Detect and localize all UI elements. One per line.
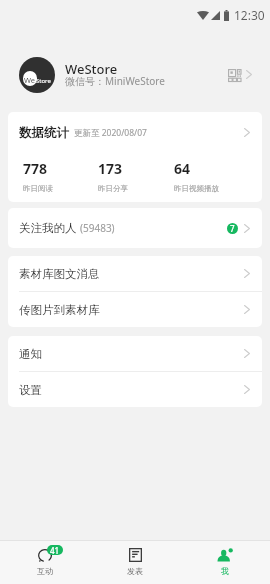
staticText: 我 — [221, 566, 229, 576]
staticText: 昨日分享 — [98, 184, 128, 193]
staticText: 12:30 — [234, 7, 265, 23]
staticText: 设置 — [19, 383, 42, 397]
button[interactable]: 素材库图文消息 — [8, 256, 262, 291]
button[interactable]: We — [0, 47, 270, 102]
button[interactable]: 41 — [0, 541, 90, 584]
staticText: 通知 — [19, 347, 42, 361]
button[interactable]: 设置 — [8, 372, 262, 407]
staticText: 数据统计 — [19, 125, 69, 141]
staticText: 64 — [174, 159, 191, 178]
staticText: 素材库图文消息 — [19, 267, 100, 281]
staticText: 关注我的人 — [19, 221, 77, 235]
staticText: (59483) — [80, 221, 115, 235]
button[interactable]: 我 — [180, 541, 270, 584]
staticText: 41 — [50, 545, 60, 555]
staticText: 173 — [98, 159, 123, 178]
staticText: 微信号：MiniWeStore — [65, 74, 165, 88]
button[interactable]: QR code — [225, 65, 245, 85]
button[interactable]: 数据统计 — [8, 112, 262, 153]
staticText: 互动 — [37, 566, 53, 576]
staticText: 昨日阅读 — [23, 184, 53, 193]
staticText: Store — [36, 77, 51, 85]
button[interactable]: 通知 — [8, 336, 262, 371]
staticText: 传图片到素材库 — [19, 303, 100, 317]
staticText: We — [24, 75, 36, 85]
button[interactable]: 关注我的人 — [8, 208, 262, 248]
staticText: 778 — [23, 159, 48, 178]
staticText: 昨日视频播放 — [174, 184, 219, 193]
staticText: 7 — [230, 223, 235, 234]
button[interactable]: 发表 — [90, 541, 180, 584]
staticText: WeStore — [65, 60, 118, 78]
staticText: 更新至 2020/08/07 — [74, 127, 147, 139]
button[interactable]: 传图片到素材库 — [8, 292, 262, 327]
staticText: 发表 — [127, 566, 143, 576]
